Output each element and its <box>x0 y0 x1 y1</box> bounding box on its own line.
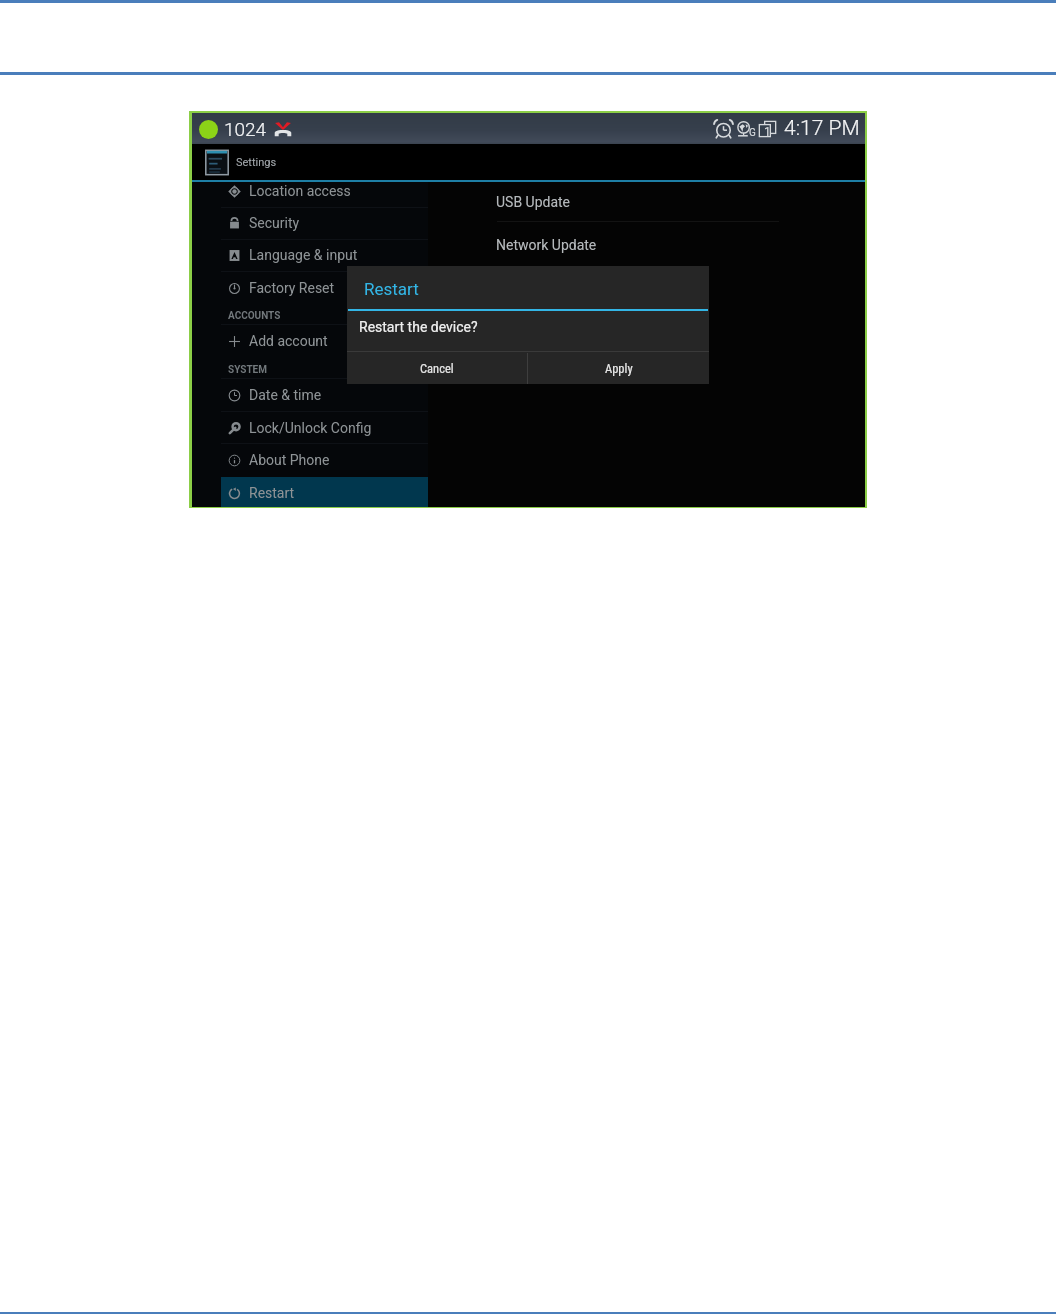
staticText: USB Update <box>496 194 571 210</box>
staticText: 1 <box>764 125 771 139</box>
button[interactable]: USB Update <box>428 182 864 222</box>
staticText: Location access <box>249 183 351 199</box>
button[interactable]: Location access <box>221 182 428 207</box>
staticText: Lock/Unlock Config <box>249 420 372 436</box>
staticText: Restart <box>364 279 419 299</box>
staticText: Cancel <box>420 361 454 376</box>
button[interactable]: About Phone <box>221 444 428 476</box>
staticText: Settings <box>236 156 277 169</box>
other: Mobile data <box>736 119 755 139</box>
other: Alarm set <box>714 119 733 139</box>
button[interactable]: Lock/Unlock Config <box>221 412 428 444</box>
staticText: Date & time <box>249 387 322 403</box>
staticText: Network Update <box>496 237 597 253</box>
button[interactable]: Date & time <box>221 379 428 411</box>
staticText: Restart <box>249 485 295 501</box>
staticText: G <box>749 127 756 139</box>
button[interactable]: Settings app icon <box>203 148 231 177</box>
staticText: ACCOUNTS <box>228 310 281 322</box>
button[interactable]: Add account <box>221 325 428 357</box>
staticText: Language & input <box>249 247 358 263</box>
button[interactable]: Restart <box>221 477 428 507</box>
staticText: SYSTEM <box>228 364 268 376</box>
staticText: About Phone <box>249 452 330 468</box>
button[interactable]: Language & input <box>221 239 428 271</box>
staticText: Factory Reset <box>249 280 335 296</box>
button[interactable]: Factory Reset <box>221 272 428 304</box>
button[interactable]: Network Update <box>428 224 864 265</box>
staticText: 1024 <box>224 118 267 140</box>
other: Missed call <box>274 120 292 138</box>
button[interactable]: Apply <box>528 353 709 384</box>
staticText: Security <box>249 215 300 231</box>
button[interactable]: Cancel <box>347 353 527 384</box>
button[interactable]: Security <box>221 207 428 239</box>
staticText: Add account <box>249 333 328 349</box>
staticText: Apply <box>605 361 633 376</box>
staticText: 4:17 PM <box>784 116 860 141</box>
staticText: Restart the device? <box>359 319 478 335</box>
other: Open windows <box>758 119 777 139</box>
